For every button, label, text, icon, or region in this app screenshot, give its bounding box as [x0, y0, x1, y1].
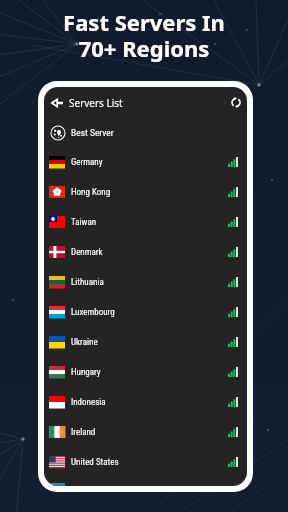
button[interactable]: United States [44, 447, 247, 477]
staticText: Lithuania [71, 277, 104, 288]
button[interactable]: Ireland [44, 417, 247, 447]
button[interactable]: Back [44, 87, 247, 118]
staticText: Germany [71, 157, 103, 168]
staticText: Indonesia [71, 397, 106, 408]
staticText: Best Server [71, 127, 114, 138]
button[interactable]: Refresh [231, 97, 241, 108]
button[interactable]: Luxembourg [44, 297, 247, 327]
staticText: Luxembourg [71, 307, 115, 318]
button[interactable]: Denmark [44, 237, 247, 267]
staticText: Hong Kong [71, 187, 111, 198]
staticText: Hungary [71, 367, 101, 378]
button[interactable]: Germany [44, 147, 247, 177]
staticText: United States [71, 457, 119, 468]
button[interactable]: Ukraine [44, 327, 247, 357]
staticText: Ireland [71, 427, 96, 438]
button[interactable]: Indonesia [44, 387, 247, 417]
staticText: Fast Servers In 70+ Regions [0, 7, 288, 64]
button[interactable]: Hungary [44, 357, 247, 387]
button[interactable]: Best Server [44, 118, 247, 147]
button[interactable]: Hong Kong [44, 177, 247, 207]
button[interactable]: Back [51, 98, 63, 108]
button[interactable]: Lithuania [44, 267, 247, 297]
staticText: Taiwan [71, 217, 97, 228]
staticText: Ukraine [71, 337, 98, 348]
staticText: Denmark [71, 247, 103, 258]
staticText: Servers List [69, 96, 123, 110]
button[interactable]: Taiwan [44, 207, 247, 237]
